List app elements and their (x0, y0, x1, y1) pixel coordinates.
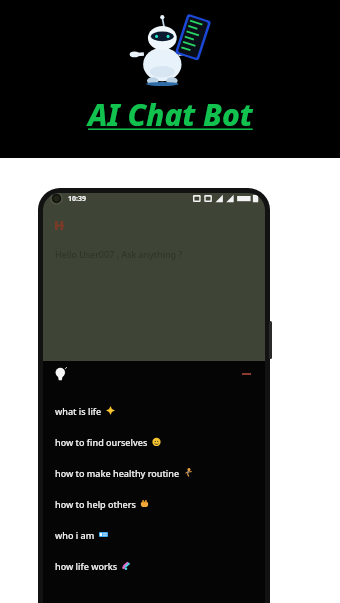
button[interactable]: how to find ourselves (43, 426, 265, 457)
button[interactable]: Suggestions (54, 367, 68, 381)
staticText: 10:39 (68, 194, 86, 204)
staticText: what is life (55, 405, 102, 417)
button[interactable]: what is life (43, 395, 265, 426)
button[interactable]: Collapse (239, 370, 254, 378)
button[interactable]: how life works (43, 550, 265, 581)
staticText: AI Chat Bot (88, 94, 253, 135)
staticText: how to help others (55, 498, 136, 510)
staticText: how to make healthy routine (55, 467, 180, 479)
staticText: how life works (55, 560, 118, 572)
button[interactable]: how to help others (43, 488, 265, 519)
staticText: who i am (55, 529, 95, 541)
staticText: Hello User007 , Ask anything ? (55, 248, 183, 260)
button[interactable]: who i am (43, 519, 265, 550)
staticText: how to find ourselves (55, 436, 148, 448)
button[interactable]: how to make healthy routine (43, 457, 265, 488)
